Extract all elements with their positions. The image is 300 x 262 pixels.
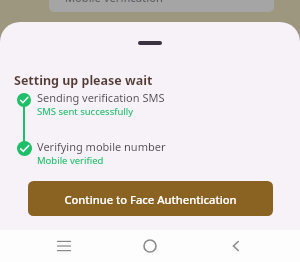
staticText: Mobile verified — [37, 154, 104, 167]
button[interactable]: Back — [221, 231, 251, 261]
button[interactable]: Recents — [49, 231, 79, 261]
staticText: Verifying mobile number — [37, 139, 166, 154]
staticText: Setting up please wait — [14, 72, 153, 89]
button[interactable]: Continue to Face Authentication — [28, 181, 273, 216]
staticText: SMS sent successfully — [37, 105, 134, 118]
staticText: Mobile verification — [65, 0, 163, 5]
staticText: Continue to Face Authentication — [64, 192, 237, 207]
button[interactable]: Home — [135, 231, 165, 261]
staticText: Sending verification SMS — [37, 90, 165, 105]
